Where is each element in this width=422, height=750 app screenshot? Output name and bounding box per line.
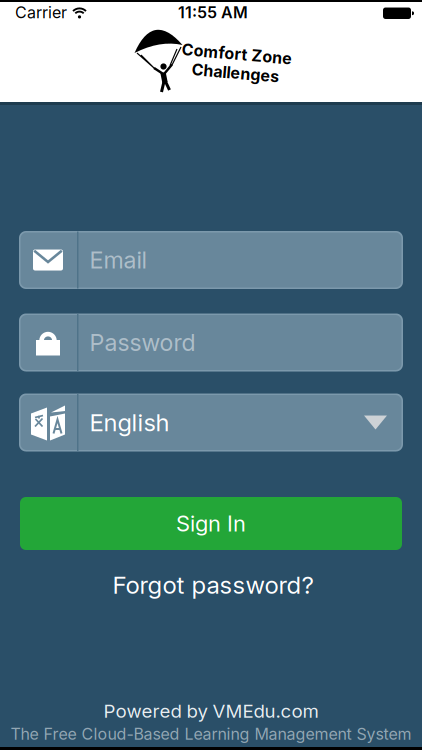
button[interactable]: Password — [19, 313, 403, 371]
staticText: The Free Cloud-Based Learning Management… — [10, 724, 411, 744]
staticText: Carrier — [15, 3, 67, 22]
staticText: Challenges — [191, 64, 279, 82]
staticText: Password — [89, 328, 195, 357]
button[interactable]: Email — [19, 231, 403, 289]
button[interactable]: Sign In — [20, 497, 402, 550]
button[interactable]: English — [19, 393, 403, 451]
staticText: Email — [89, 246, 146, 274]
staticText: Comfort Zone — [181, 45, 292, 63]
staticText: Forgot password? — [112, 570, 313, 600]
staticText: Powered by VMEdu.com — [103, 700, 318, 722]
staticText: Sign In — [176, 510, 246, 537]
staticText: 11:55 AM — [178, 3, 248, 22]
staticText: English — [89, 408, 169, 437]
button[interactable]: Forgot password? — [112, 570, 313, 600]
